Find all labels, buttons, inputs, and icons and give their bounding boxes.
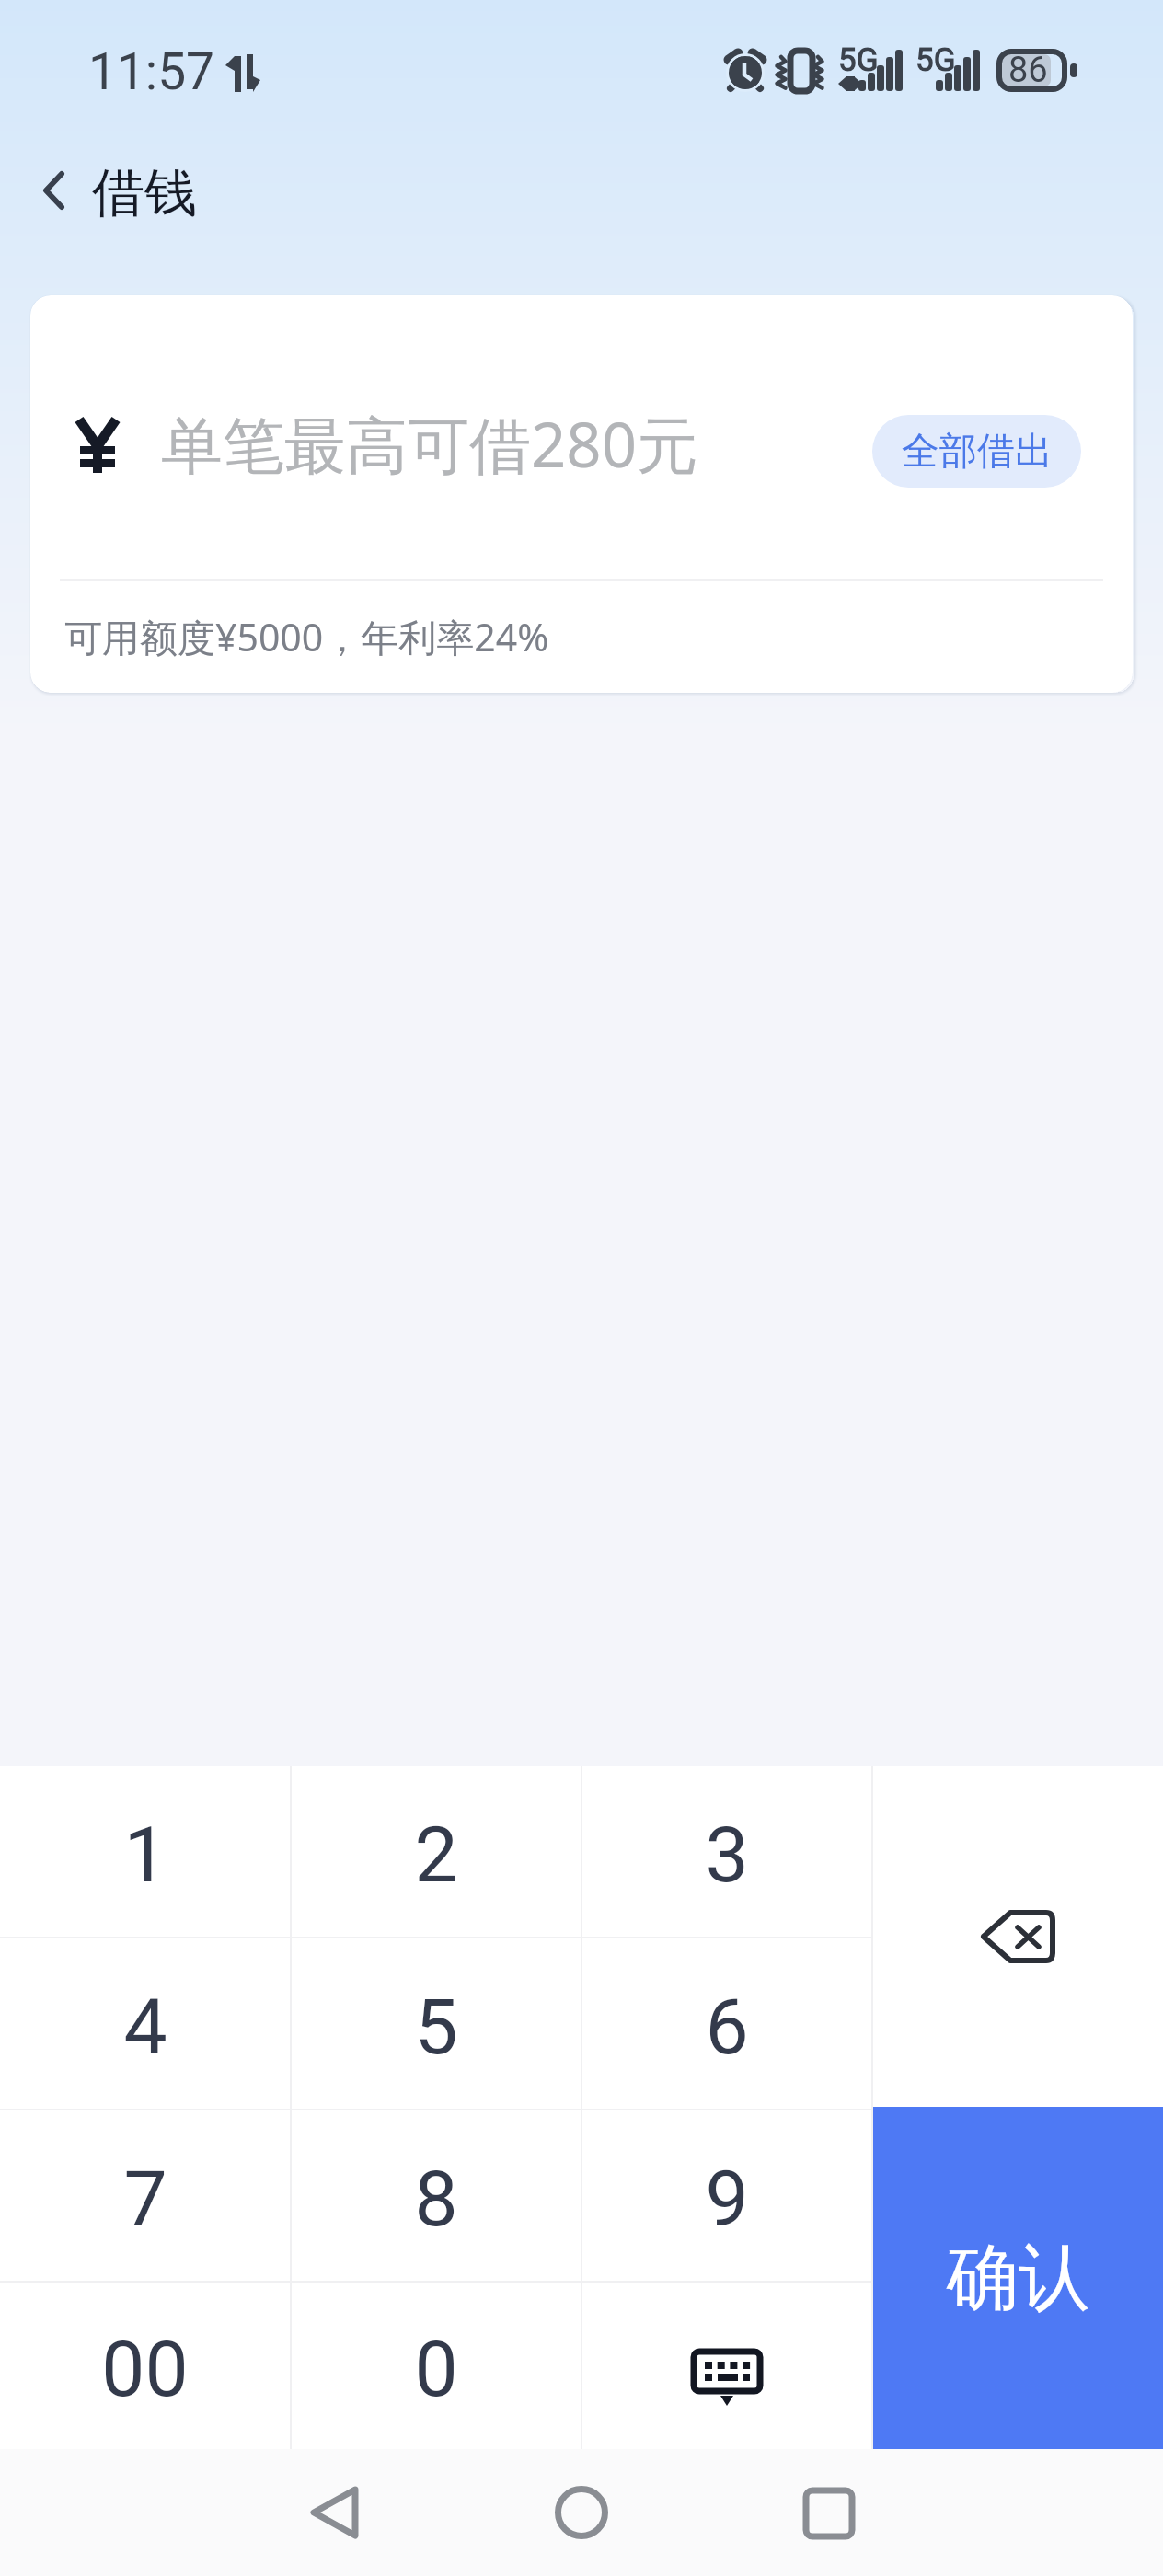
staticText: 8 (414, 2154, 458, 2244)
staticText: 11:57 (88, 42, 214, 101)
staticText: 7 (123, 2154, 167, 2244)
button[interactable]: Backspace (873, 1766, 1163, 2107)
staticText: 00 (101, 2324, 189, 2414)
button[interactable]: 4 (0, 1938, 290, 2109)
button[interactable]: 3 (582, 1766, 871, 1937)
button[interactable]: 8 (292, 2110, 581, 2281)
staticText: 单笔最高可借280元 (161, 401, 698, 486)
staticText: 0 (414, 2324, 458, 2414)
staticText: 9 (705, 2154, 749, 2244)
staticText: 5G (838, 41, 879, 79)
staticText: 借钱 (92, 160, 197, 226)
staticText: 可用额度¥5000，年利率24% (64, 611, 549, 662)
staticText: 5 (414, 1982, 458, 2072)
staticText: 1 (123, 1810, 167, 1900)
button[interactable]: 1 (0, 1766, 290, 1937)
staticText: 3 (705, 1810, 749, 1900)
staticText: 86 (1008, 50, 1048, 91)
button[interactable]: 0 (292, 2283, 581, 2449)
staticText: 全部借出 (902, 428, 1053, 476)
button[interactable]: 7 (0, 2110, 290, 2281)
staticText: 6 (705, 1982, 749, 2072)
staticText: 确认 (947, 2233, 1090, 2323)
button[interactable]: Home (522, 2453, 641, 2572)
staticText: 5G (915, 41, 956, 79)
button[interactable]: 确认 (873, 2107, 1163, 2449)
button[interactable]: 2 (292, 1766, 581, 1937)
button[interactable]: 5 (292, 1938, 581, 2109)
button[interactable]: 全部借出 (872, 415, 1081, 488)
button[interactable]: Back (0, 143, 92, 247)
button[interactable]: Back (274, 2453, 394, 2572)
button[interactable]: Hide keyboard (582, 2283, 871, 2449)
staticText: 4 (123, 1982, 167, 2072)
button[interactable]: 6 (582, 1938, 871, 2109)
button[interactable]: 00 (0, 2283, 290, 2449)
staticText: 2 (414, 1810, 458, 1900)
button[interactable]: Recents (769, 2453, 889, 2572)
button[interactable]: 9 (582, 2110, 871, 2281)
